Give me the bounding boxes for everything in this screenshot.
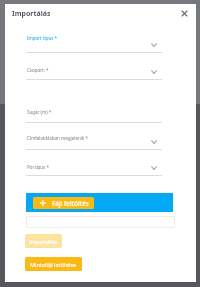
button[interactable]: Mintafájl letöltése bbox=[25, 257, 82, 271]
staticText: Poi típus * bbox=[27, 164, 49, 170]
staticText: Fájl feltöltés bbox=[52, 199, 89, 208]
button[interactable]: Open dropdown bbox=[149, 163, 159, 173]
staticText: Import típus * bbox=[27, 35, 58, 41]
staticText: Importálás bbox=[12, 9, 51, 19]
button[interactable]: Open dropdown bbox=[149, 67, 159, 77]
button[interactable]: Open dropdown bbox=[149, 40, 159, 50]
button[interactable] bbox=[26, 161, 162, 181]
staticText: Sugár (m) * bbox=[27, 109, 52, 115]
button[interactable]: Open dropdown bbox=[149, 137, 159, 147]
button[interactable]: Fájl feltöltés bbox=[33, 197, 94, 209]
staticText: Címfeloldásban megjelenik * bbox=[27, 135, 88, 141]
button[interactable] bbox=[26, 108, 162, 128]
button[interactable] bbox=[26, 65, 162, 85]
button[interactable] bbox=[26, 133, 162, 153]
button[interactable] bbox=[26, 33, 162, 53]
staticText: Importálás bbox=[29, 238, 58, 245]
button[interactable]: Importálás bbox=[25, 234, 62, 248]
staticText: Csoport: * bbox=[27, 67, 49, 73]
button[interactable]: Close bbox=[177, 6, 191, 20]
staticText: Mintafájl letöltése bbox=[30, 261, 77, 268]
